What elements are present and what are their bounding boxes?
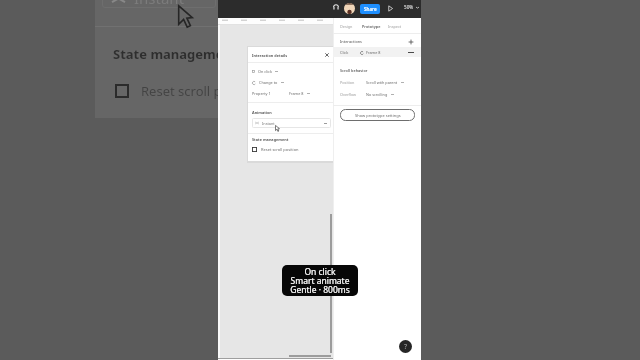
staticText: No scrolling <box>366 92 388 97</box>
staticText: Overflow <box>340 92 357 97</box>
button[interactable]: Click <box>333 47 421 57</box>
staticText: Reset scroll position <box>261 147 299 152</box>
button[interactable]: Prototype <box>362 24 381 29</box>
staticText: Instant <box>134 0 185 8</box>
staticText: Property 1 <box>252 91 271 96</box>
staticText: ? <box>404 342 408 352</box>
staticText: Frame 8 <box>289 91 304 96</box>
staticText: Instant <box>262 121 275 126</box>
button[interactable]: Instant <box>252 118 331 128</box>
staticText: Animation <box>252 110 272 115</box>
staticText: On click Smart animate Gentle · 800ms <box>290 266 350 296</box>
button[interactable]: Inspect <box>388 24 402 29</box>
button[interactable]: Present <box>387 5 394 12</box>
staticText: Show prototype settings <box>355 113 401 118</box>
staticText: Click <box>340 50 349 55</box>
button[interactable]: 50% <box>404 4 419 10</box>
button[interactable]: Design <box>340 24 353 29</box>
staticText: Reset scroll p <box>141 82 222 100</box>
button[interactable]: Close <box>325 53 329 57</box>
staticText: Position <box>340 80 355 85</box>
staticText: Change to <box>259 80 278 85</box>
button[interactable]: Help <box>399 340 412 353</box>
staticText: Frame 8 <box>366 50 381 55</box>
staticText: State management <box>113 45 238 63</box>
staticText: Scroll behavior <box>340 68 368 73</box>
button[interactable]: Change to <box>252 80 284 85</box>
button[interactable]: Audio chat <box>333 4 339 10</box>
staticText: 50% <box>404 4 414 10</box>
staticText: Interaction details <box>252 53 288 58</box>
button[interactable]: Share <box>360 4 380 14</box>
staticText: Share <box>364 6 377 12</box>
staticText: Scroll with parent <box>366 80 398 85</box>
button[interactable]: Interactions <box>340 39 362 44</box>
staticText: On click <box>258 69 272 74</box>
button[interactable]: Add interaction <box>408 39 414 45</box>
button[interactable]: Reset scroll position <box>252 147 299 152</box>
staticText: State management <box>252 137 289 142</box>
button[interactable]: Show prototype settings <box>340 109 415 121</box>
button[interactable]: Account <box>344 3 355 14</box>
button[interactable]: On click <box>252 69 278 74</box>
